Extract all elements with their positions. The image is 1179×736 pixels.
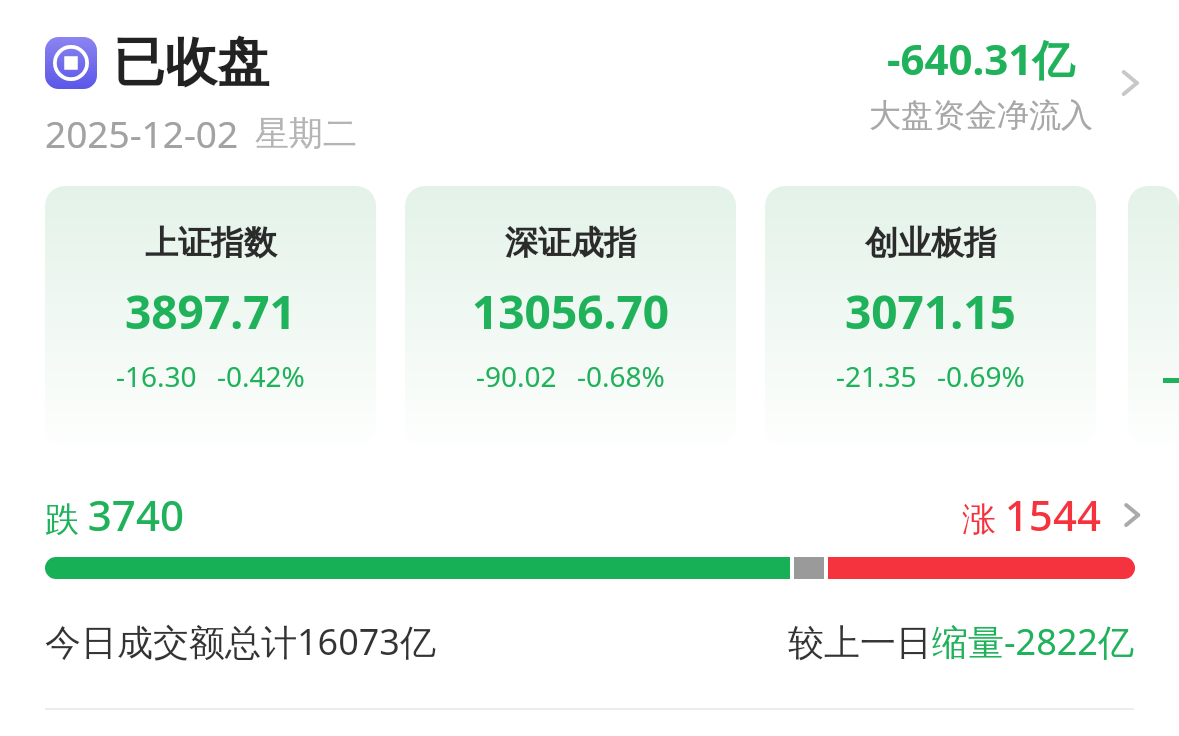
other: Market closed (45, 37, 97, 89)
staticText: 上证指数 (145, 222, 277, 264)
staticText: 今日成交额总计16073亿 (45, 617, 436, 666)
staticText: -640.31亿 (887, 30, 1075, 87)
button[interactable]: 上证指数 (45, 186, 376, 446)
staticText: 3897.71 (125, 280, 296, 343)
staticText: 较上一日缩量-2822亿 (788, 617, 1134, 666)
staticText: 深证成指 (505, 222, 637, 264)
staticText: 13056.70 (472, 280, 670, 343)
staticText: -0.69% (937, 357, 1025, 395)
staticText: 创业板指 (865, 222, 997, 264)
staticText: -0.68% (577, 357, 665, 395)
staticText: -90.02 (476, 357, 557, 395)
staticText: 星期二 (255, 112, 357, 155)
button[interactable]: -640.31亿 (861, 30, 1151, 135)
button[interactable]: 深证成指 (405, 186, 736, 446)
other: More fund flow (1107, 61, 1151, 105)
staticText: 2025-12-02 (45, 108, 239, 158)
button[interactable]: 创业板指 (765, 186, 1096, 446)
staticText: -21.35 (836, 357, 917, 395)
button[interactable]: 跌 3740 (45, 486, 1151, 543)
staticText: -0.42% (217, 357, 305, 395)
button[interactable] (1128, 186, 1179, 446)
staticText: 大盘资金净流入 (869, 95, 1093, 135)
other: More up down detail (1111, 495, 1151, 535)
staticText: 涨 1544 (962, 486, 1101, 543)
staticText: 跌 3740 (45, 486, 184, 543)
staticText: 3071.15 (845, 280, 1016, 343)
staticText: 已收盘 (113, 30, 269, 96)
staticText: -16.30 (116, 357, 197, 395)
